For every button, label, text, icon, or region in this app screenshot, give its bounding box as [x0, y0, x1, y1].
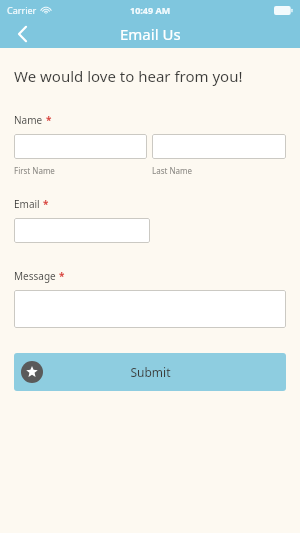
staticText: Email [14, 197, 40, 211]
staticText: Submit [130, 364, 171, 380]
staticText: First Name [14, 165, 55, 176]
button[interactable] [14, 134, 147, 159]
staticText: * [59, 269, 65, 283]
staticText: 10:49 AM [130, 4, 171, 16]
staticText: Email Us [120, 24, 181, 44]
button[interactable] [152, 134, 286, 159]
staticText: Carrier [7, 4, 37, 16]
staticText: Name [14, 113, 43, 127]
button[interactable]: Submit [14, 353, 286, 391]
button[interactable]: Back [0, 20, 44, 48]
staticText: Last Name [152, 165, 193, 176]
staticText: Message [14, 269, 56, 283]
staticText: We would love to hear from you! [14, 66, 243, 86]
staticText: * [43, 197, 49, 211]
button[interactable] [14, 218, 150, 243]
button[interactable] [14, 290, 286, 328]
staticText: * [46, 113, 52, 127]
